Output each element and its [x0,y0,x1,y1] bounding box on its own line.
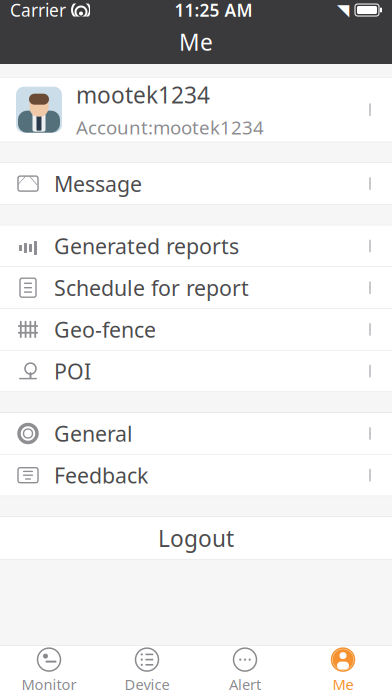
staticText: Alert [229,675,261,694]
staticText: 11:25 AM [174,0,252,21]
staticText: mootek1234 [76,80,210,110]
button[interactable]: POI [0,351,392,392]
staticText: Feedback [54,461,148,489]
staticText: Logout [158,523,234,553]
staticText: Generated reports [54,232,239,260]
staticText: ／＼ [17,173,39,186]
staticText: Me [179,27,213,57]
button[interactable]: Generated reports [0,225,392,266]
button[interactable]: mootek1234 [0,78,392,142]
staticText: General [54,419,133,448]
staticText: POI [54,357,91,385]
button[interactable]: Feedback [0,455,392,496]
staticText: Me [332,675,353,694]
staticText: Monitor [21,675,76,694]
button[interactable]: ／＼ [0,163,392,204]
button[interactable]: General [0,413,392,454]
button[interactable]: Monitor [0,646,98,696]
button[interactable]: Geo-fence [0,309,392,350]
staticText: Carrier [10,0,66,21]
staticText: Message [54,169,142,198]
button[interactable]: Schedule for report [0,267,392,308]
button[interactable]: Logout [0,517,392,559]
staticText: Geo-fence [54,315,156,343]
staticText: ◥ [337,1,349,19]
staticText: Device [124,675,169,694]
staticText: Account:mootek1234 [76,115,264,140]
staticText: Schedule for report [54,273,249,302]
button[interactable]: Device [98,646,196,696]
button[interactable]: Me [294,646,392,696]
button[interactable]: Alert [196,646,294,696]
